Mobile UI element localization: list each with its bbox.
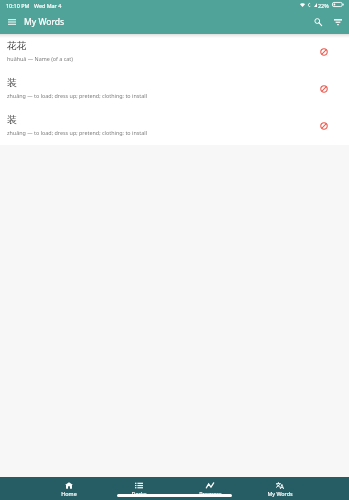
staticText: huāhuā — Name (of a cat) [7,55,73,62]
button[interactable]: Remove from my words [317,45,331,59]
button[interactable]: Remove from my words [317,82,331,96]
staticText: Decks [131,490,147,497]
button[interactable]: Remove from my words [317,119,331,133]
staticText: 22% [318,2,329,9]
staticText: My Words [267,490,293,497]
staticText: My Words [24,16,65,28]
staticText: zhuāng — to load; dress up; pretend; clo… [7,129,148,136]
staticText: Progress [199,490,222,497]
button[interactable]: Decks [104,477,174,497]
button[interactable]: 装 [0,108,349,145]
staticText: 花花 [7,40,27,52]
button[interactable]: 花花 [0,34,349,71]
staticText: 装 [7,77,17,89]
staticText: Wed Mar 4 [34,2,62,9]
button[interactable]: Home [34,477,104,497]
button[interactable]: My Words [245,477,315,497]
staticText: Home [61,490,77,497]
staticText: 装 [7,114,17,126]
button[interactable]: Filter [330,14,346,30]
button[interactable]: Search [310,14,326,30]
staticText: 10:10 PM [6,2,30,9]
button[interactable]: Progress [175,477,245,497]
button[interactable]: 装 [0,71,349,108]
button[interactable]: Open navigation menu [4,14,20,30]
staticText: zhuāng — to load; dress up; pretend; clo… [7,92,148,99]
